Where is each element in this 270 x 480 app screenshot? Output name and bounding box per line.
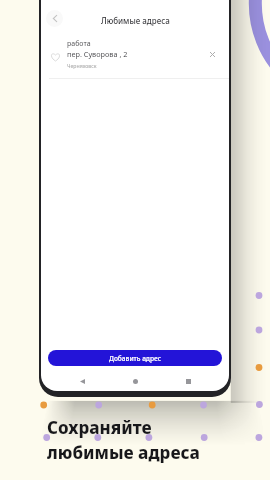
staticText: Любимые адреса: [101, 15, 170, 26]
staticText: Черняховск: [67, 62, 97, 69]
button[interactable]: Back: [46, 10, 63, 27]
button[interactable]: Remove address: [202, 38, 224, 78]
staticText: Добавить адрес: [109, 354, 162, 363]
button[interactable]: Back: [77, 376, 88, 387]
staticText: пер. Суворова , 2: [67, 49, 128, 59]
staticText: любимые адреса: [47, 441, 200, 464]
button[interactable]: работа: [41, 38, 229, 78]
button[interactable]: Home: [130, 376, 141, 387]
button[interactable]: Добавить адрес: [48, 350, 222, 366]
staticText: работа: [67, 39, 91, 49]
button[interactable]: Recent apps: [183, 376, 194, 387]
staticText: Сохраняйте: [47, 416, 152, 439]
